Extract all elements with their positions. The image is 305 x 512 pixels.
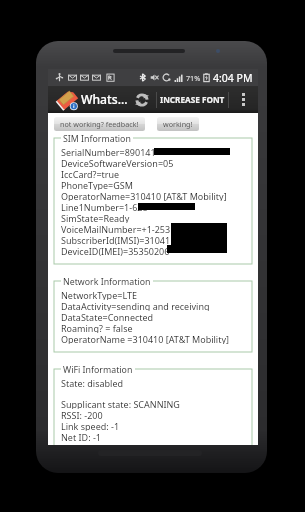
button[interactable]: working! <box>157 117 199 131</box>
staticText: 4:04 PM <box>213 71 253 85</box>
staticText: State: disabled <box>61 377 124 388</box>
staticText: Network Information <box>63 276 151 288</box>
staticText: SerialNumber=890141 <box>61 146 156 157</box>
button[interactable]: not working? feedback! <box>54 117 145 131</box>
staticText: DataActivity=sending and receiving <box>61 300 210 311</box>
staticText: not working? feedback! <box>60 119 139 129</box>
staticText: OperatorName=310410 [AT&T Mobility] <box>61 190 227 201</box>
staticText: NetworkType=LTE <box>61 289 137 300</box>
staticText: WiFi Information <box>63 364 133 376</box>
staticText: SIM Information <box>63 133 131 145</box>
staticText: INCREASE FONT <box>160 94 225 105</box>
staticText: IccCard?=true <box>61 168 120 179</box>
staticText: DeviceSoftwareVersion=05 <box>61 157 174 168</box>
staticText: Supplicant state: SCANNING <box>61 398 180 409</box>
staticText: SubscriberId(IMSI)=31041 <box>61 234 171 245</box>
staticText: PhoneType=GSM <box>61 179 133 190</box>
staticText: Link speed: -1 <box>61 420 120 431</box>
staticText: Line1Number=1-628 <box>61 201 148 212</box>
button[interactable]: More options <box>229 86 258 113</box>
button[interactable]: Refresh <box>128 86 156 113</box>
staticText: DeviceID(IMEI)=35350206 <box>61 245 170 256</box>
staticText: VoiceMailNumber=+1-253 <box>61 223 171 234</box>
staticText: OperatorName =310410 [AT&T Mobility] <box>61 333 229 344</box>
staticText: Whats... <box>81 91 128 108</box>
staticText: RSSI: -200 <box>61 409 103 420</box>
staticText: SimState=Ready <box>61 212 130 223</box>
staticText: Net ID: -1 <box>61 431 101 442</box>
staticText: Roaming? = false <box>61 322 133 333</box>
staticText: DataState=Connected <box>61 311 154 322</box>
button[interactable]: INCREASE FONT <box>157 86 228 113</box>
staticText: working! <box>163 119 193 129</box>
staticText: 71% <box>186 73 201 83</box>
